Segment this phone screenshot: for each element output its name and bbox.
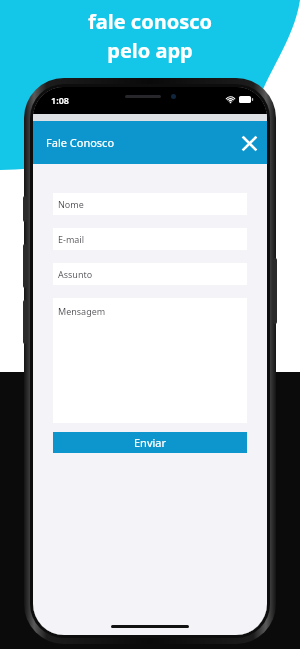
staticText: E-mail [58,233,85,245]
staticText: pelo app [107,37,193,64]
staticText: 1:08 [51,94,69,106]
button[interactable]: Enviar [53,432,247,453]
staticText: Enviar [134,435,167,450]
staticText: Fale Conosco [46,135,115,150]
button[interactable]: Mensagem [53,298,247,423]
staticText: Nome [58,198,84,210]
button[interactable]: Fechar [231,125,267,161]
button[interactable]: Assunto [53,263,247,285]
button[interactable]: Nome [53,193,247,215]
staticText: fale conosco [88,8,212,35]
staticText: Mensagem [58,305,106,317]
button[interactable]: E-mail [53,228,247,250]
staticText: Assunto [58,268,93,280]
